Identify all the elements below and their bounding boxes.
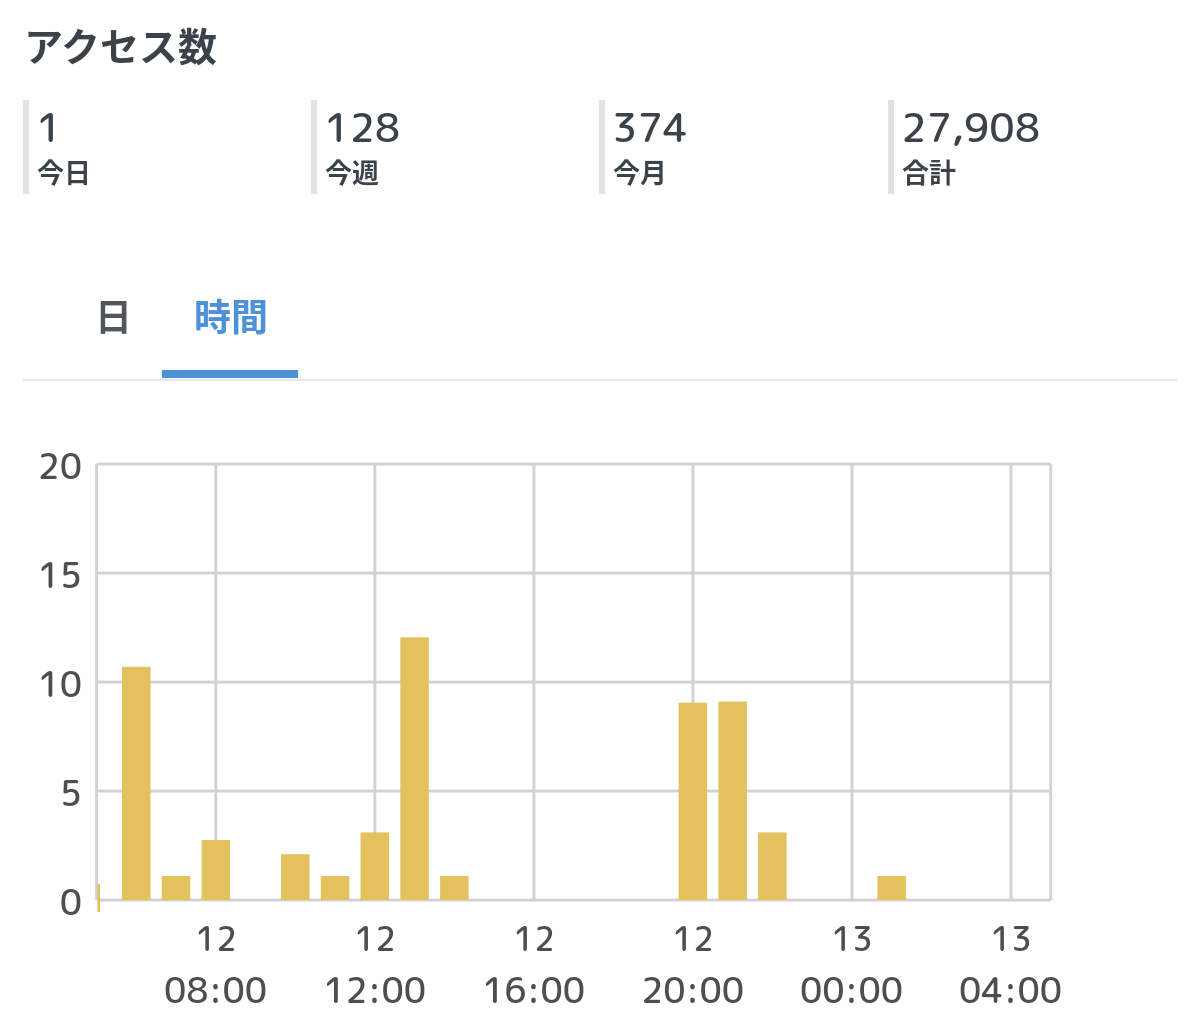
button[interactable]: 日 [64, 261, 163, 369]
staticText: 16:00 [482, 965, 586, 1014]
staticText: 20 [37, 441, 82, 490]
staticText: 12 [195, 915, 237, 961]
staticText: 08:00 [164, 965, 268, 1014]
staticText: 04:00 [959, 965, 1063, 1014]
staticText: 27,908 [901, 99, 1041, 155]
button[interactable]: 時間 [163, 261, 299, 369]
staticText: 374 [612, 99, 689, 155]
staticText: 1 [36, 99, 62, 155]
staticText: 12:00 [323, 965, 427, 1014]
staticText: 00:00 [800, 965, 904, 1014]
staticText: 13 [990, 915, 1032, 961]
staticText: 13 [831, 915, 873, 961]
staticText: 128 [324, 99, 401, 155]
staticText: 今週 [325, 152, 379, 191]
staticText: 20:00 [641, 965, 745, 1014]
staticText: 0 [59, 877, 82, 926]
staticText: 日 [95, 288, 132, 342]
staticText: 今月 [613, 152, 667, 191]
staticText: 12 [672, 915, 714, 961]
staticText: 時間 [194, 288, 268, 342]
staticText: 10 [37, 659, 82, 708]
staticText: 5 [59, 768, 82, 817]
staticText: 12 [513, 915, 555, 961]
staticText: 12 [354, 915, 396, 961]
staticText: 今日 [37, 152, 91, 191]
staticText: 合計 [902, 152, 956, 191]
staticText: アクセス数 [24, 16, 218, 72]
staticText: 15 [37, 550, 82, 599]
